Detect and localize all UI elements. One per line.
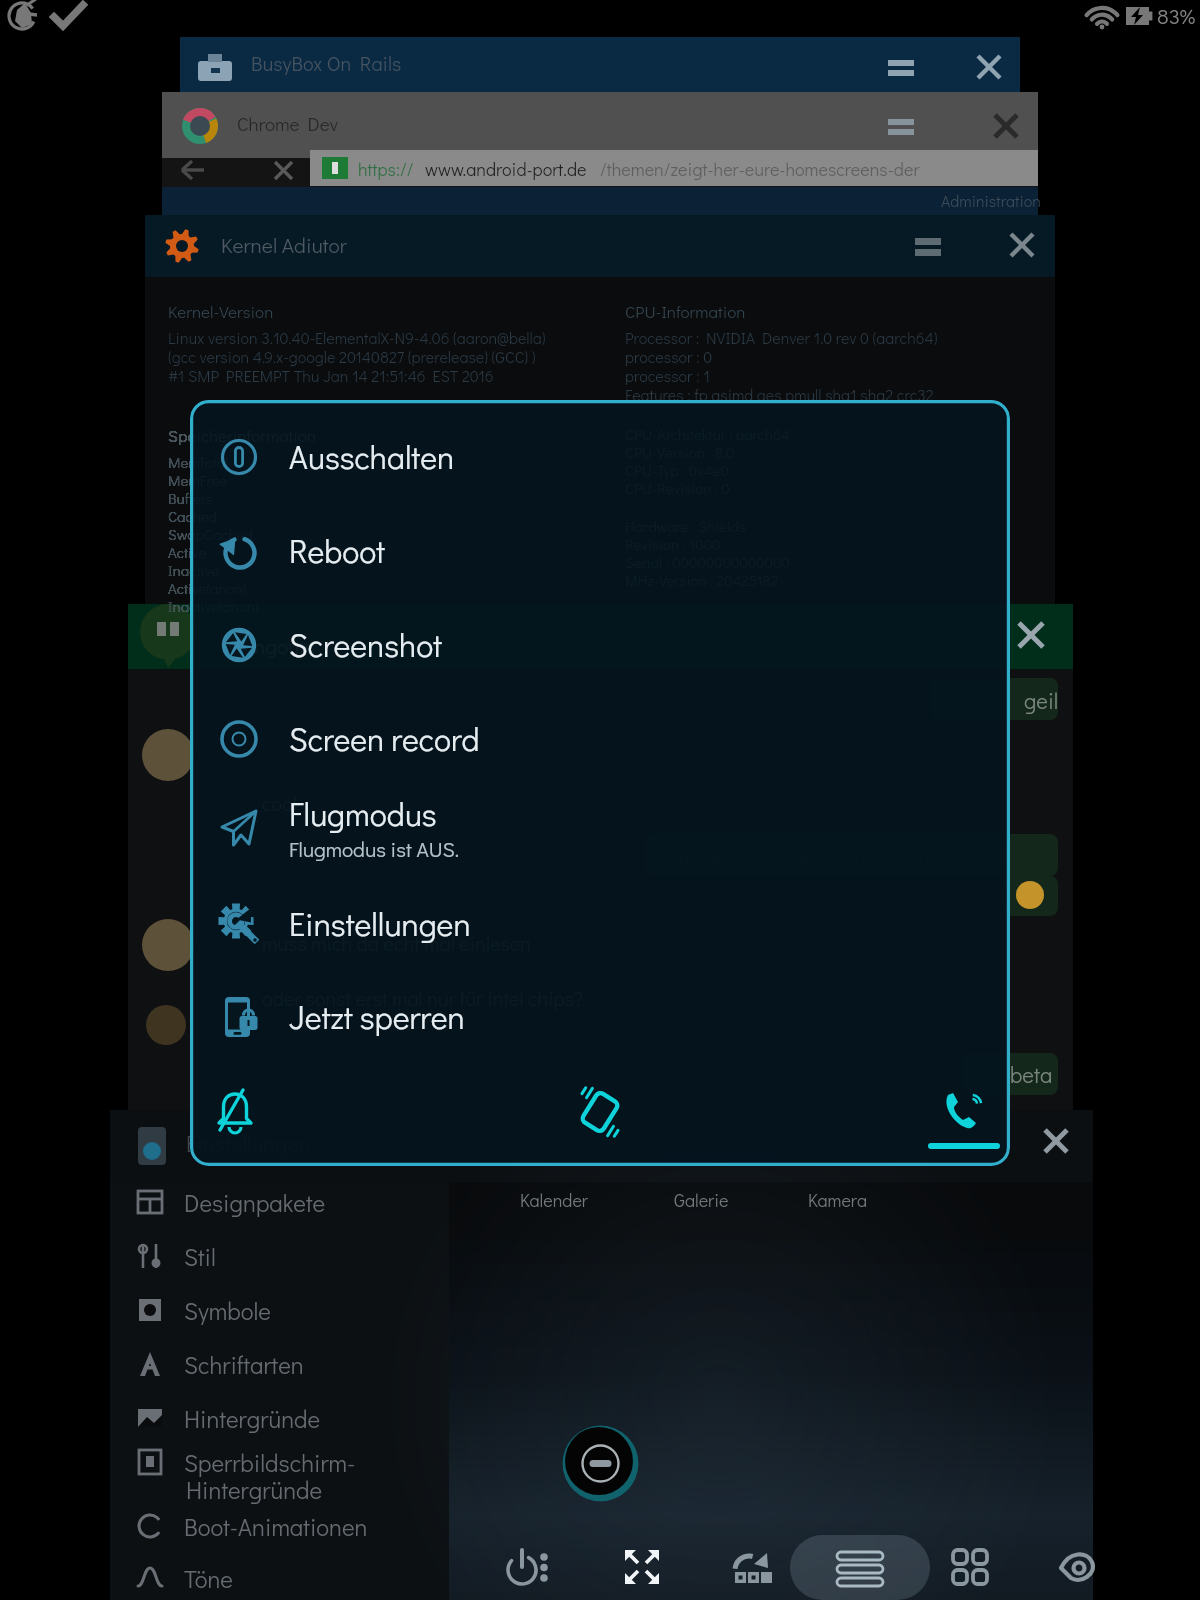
staticText: Töne [184,1563,233,1594]
button[interactable]: Einstellungen [190,877,1010,971]
staticText: MemFree [168,470,228,490]
staticText: processor : 1 [625,365,710,386]
staticText: SwapCached [168,524,254,544]
staticText: geil [1024,686,1059,715]
staticText: Active [168,542,190,562]
staticText: Inactive [168,560,190,580]
staticText: /themen/zeigt-her-eure-homescreens-der [600,157,920,181]
staticText: Cached [168,506,190,526]
button[interactable]: Screenshot [190,598,1010,692]
staticText: oder sonst erst mal nur für intel chips? [262,985,584,1011]
staticText: Galerie [674,1188,729,1212]
staticText: muss mich da echt mal einlesen [262,930,531,956]
staticText: Active(anon) [168,578,190,598]
staticText: Inactive [168,560,219,580]
staticText: Einstellungen [289,903,471,945]
staticText: MemTotal [168,452,190,472]
staticText: Einstellungen [186,1129,311,1158]
button[interactable]: Sperrbildschirm- [110,1436,415,1488]
staticText: cool [262,790,297,816]
staticText: #1 SMP PREEMPT Thu Jan 14 21:51:46 EST 2… [168,365,494,386]
button[interactable]: Symbole [110,1284,415,1336]
staticText: Buffers [168,488,213,508]
button[interactable]: Ausschalten [190,410,1010,504]
staticText: Active [168,542,207,562]
button[interactable]: Vibrate [564,1076,636,1148]
staticText: MemTotal [168,452,229,472]
staticText: Boot-Animationen [184,1511,368,1542]
button[interactable]: Boot-Animationen [110,1500,415,1552]
staticText: https:// [358,157,414,181]
staticText: Speicherinformation [168,424,316,446]
button[interactable]: All apps [940,1534,1000,1600]
staticText: Kernel-Version [168,300,274,322]
button[interactable]: Do not disturb [562,1425,639,1502]
staticText: Symbole [184,1295,271,1326]
staticText: Inactive(anon) [168,596,259,616]
button[interactable]: Show [1048,1534,1108,1600]
button[interactable]: Designpakete [110,1176,415,1228]
button[interactable]: Hintergründe [110,1392,415,1444]
staticText: Ausschalten [289,436,455,478]
button[interactable]: Ring [929,1076,1001,1166]
staticText: Hintergründe [184,1403,321,1434]
button[interactable]: Jetzt sperren [190,970,1010,1064]
staticText: (gcc version 4.9.x-google 20140827 (prer… [168,346,536,367]
button[interactable]: Schriftarten [110,1338,415,1390]
staticText: Hab aber schon die Flugmodus fix vom Gxx… [655,843,1012,868]
staticText: Screen record [289,718,480,760]
button[interactable]: Töne [110,1552,415,1600]
staticText: Flugmodus [289,793,437,835]
button[interactable]: Power menu [497,1534,557,1600]
staticText: Active(anon) [168,578,246,598]
button[interactable]: Flugmodus [190,781,1010,875]
staticText: Chrome Dev [237,111,339,136]
staticText: Buffers [168,488,190,508]
button[interactable]: Recents [790,1535,930,1600]
staticText: 83% [1157,2,1196,30]
button[interactable]: Reboot [190,504,1010,598]
staticText: Kamera [808,1188,868,1212]
staticText: BusyBox On Rails [251,50,402,76]
button[interactable]: Rotate [721,1534,781,1600]
staticText: MemFree [168,470,190,490]
staticText: Hintergründe [186,1474,323,1505]
staticText: Designpakete [184,1187,326,1218]
staticText: CPU-Information [625,300,746,322]
staticText: SwapCached [168,524,190,544]
staticText: Jetzt sperren [289,996,465,1038]
staticText: Reboot [289,530,386,572]
button[interactable]: Fullscreen [612,1534,672,1600]
staticText: Linux version 3.10.40-ElementalX-N9-4.06… [168,327,546,348]
button[interactable]: Screen record [190,692,1010,786]
staticText: Inactive(anon) [168,596,190,616]
staticText: Hangouts [228,632,315,660]
staticText: Cached [168,506,217,526]
button[interactable]: Silent [199,1076,271,1148]
staticText: Administration [941,190,1041,211]
staticText: Schriftarten [184,1349,304,1380]
staticText: Stil [184,1241,216,1272]
staticText: beta [1010,1060,1053,1089]
staticText: Features : fp asimd aes pmull sha1 sha2 … [625,384,934,405]
staticText: Kernel Adiutor [221,231,347,259]
staticText: Sperrbildschirm- [184,1447,356,1478]
staticText: Processor : NVIDIA Denver 1.0 rev 0 (aar… [625,327,938,348]
staticText: Kalender [520,1188,588,1212]
staticText: Flugmodus ist AUS. [289,835,460,863]
button[interactable]: Stil [110,1230,415,1282]
staticText: www.android-port.de [425,157,587,181]
staticText: Speicherinformation [168,424,190,446]
staticText: Screenshot [289,624,442,666]
staticText: processor : 0 [625,346,713,367]
